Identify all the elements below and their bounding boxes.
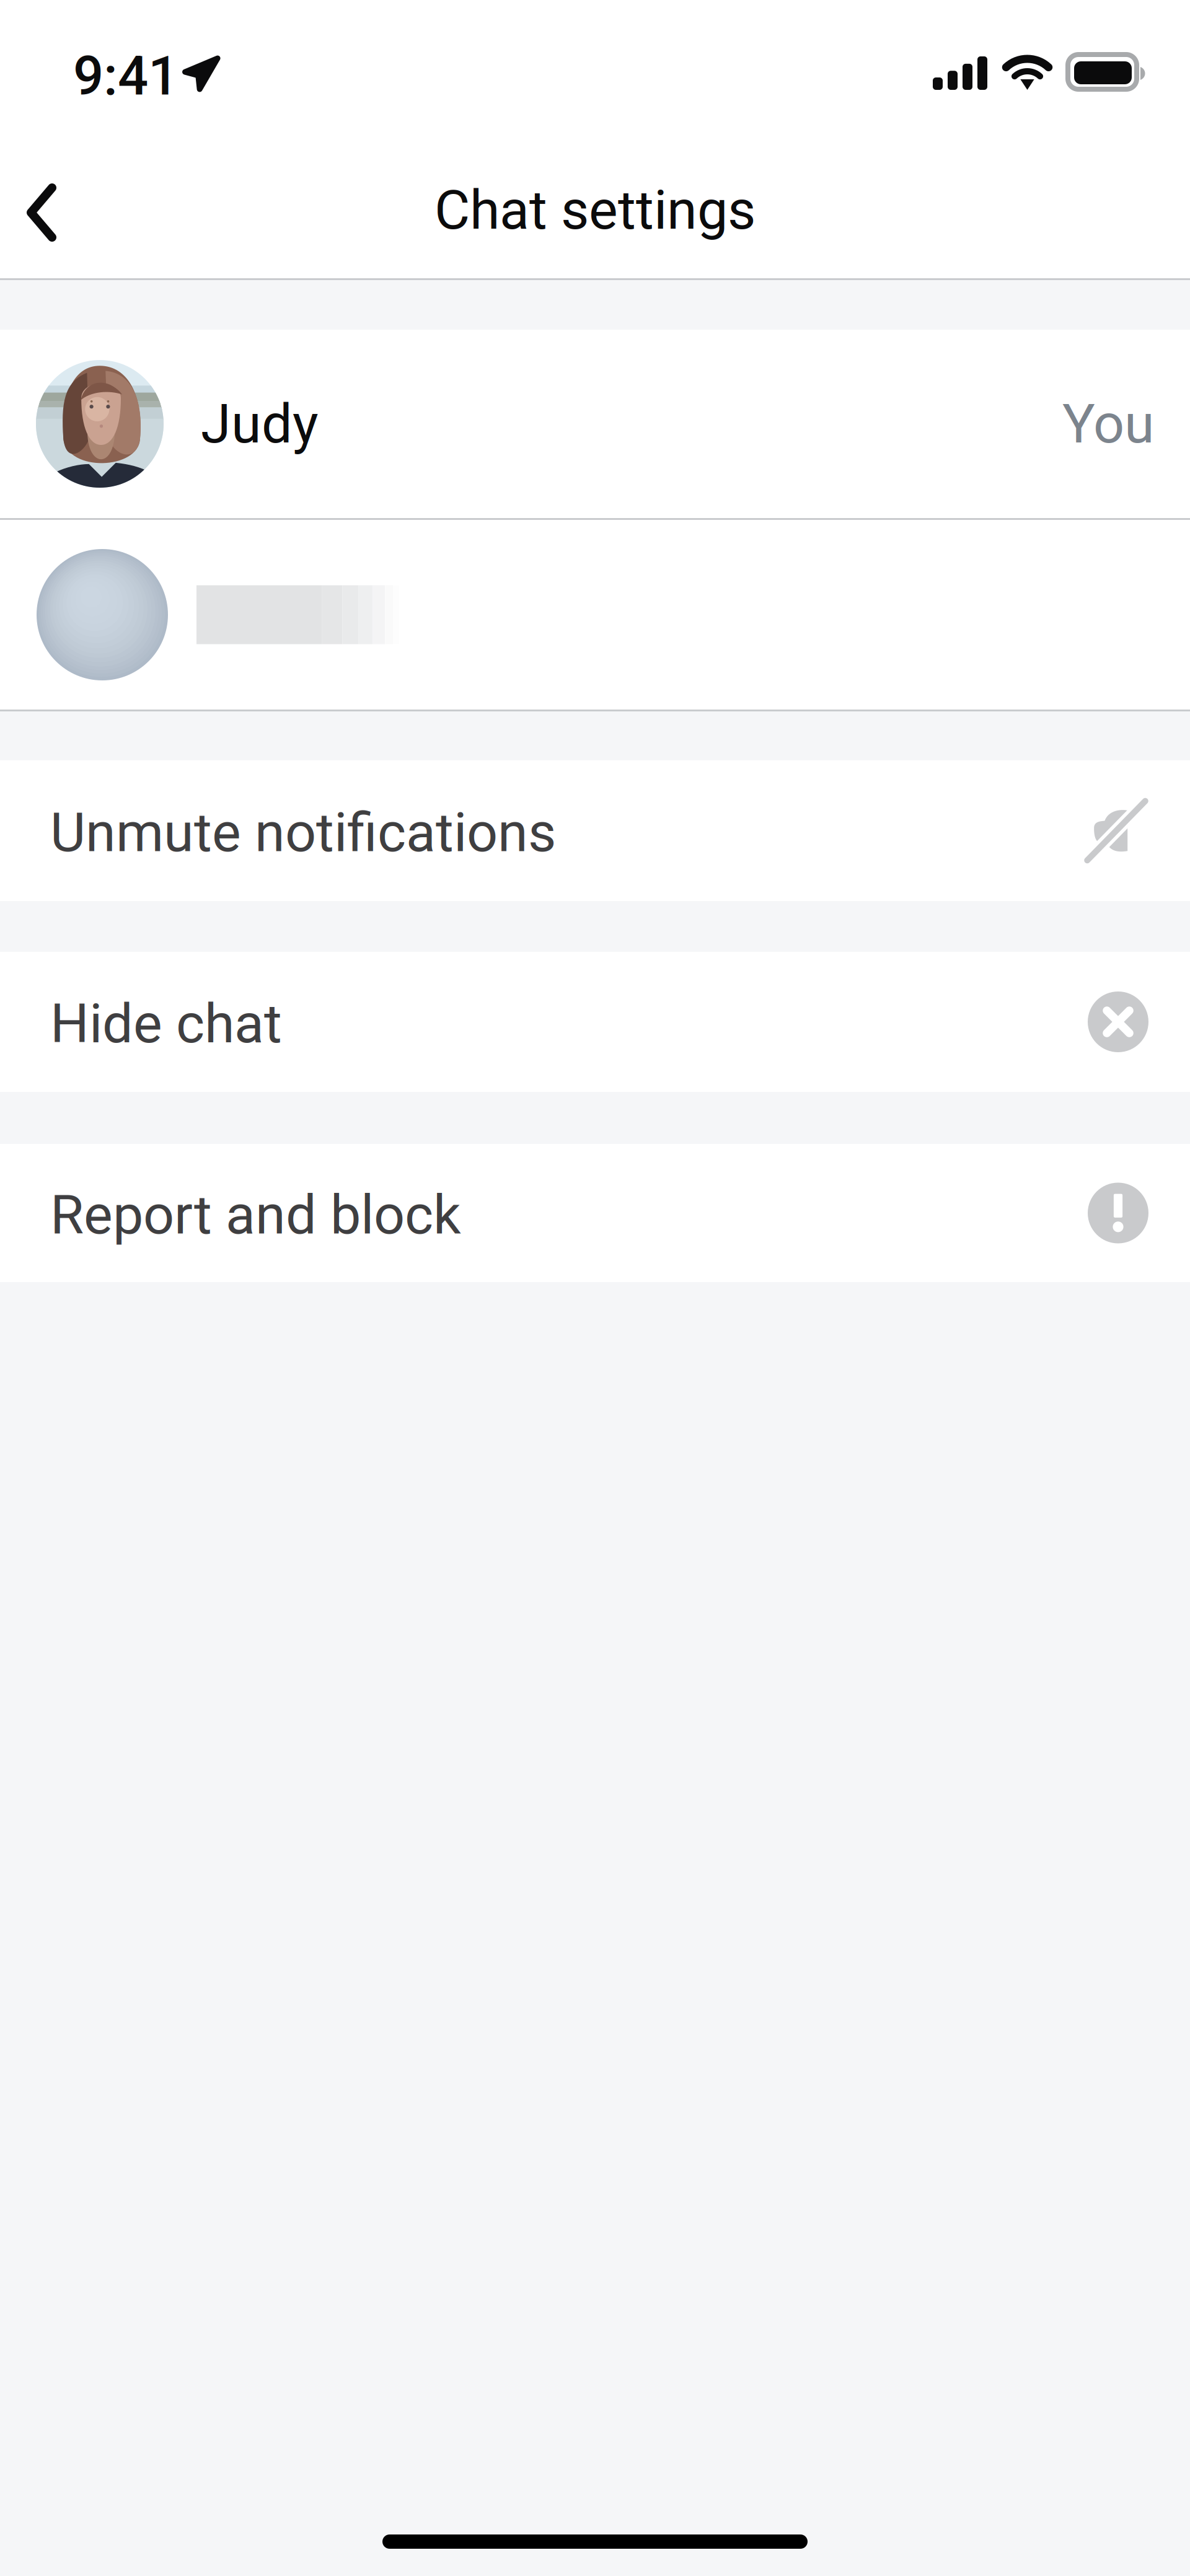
staticText: Unmute notifications (50, 801, 556, 864)
staticText: Report and block (50, 1183, 461, 1247)
staticText: Judy (201, 392, 319, 456)
staticText: 9:41 (73, 45, 178, 108)
staticText: Chat settings (434, 178, 756, 242)
button[interactable]: Unmute notifications (0, 760, 1190, 901)
staticText: Hide chat (50, 992, 282, 1056)
button[interactable]: Back (0, 112, 87, 280)
button[interactable] (0, 520, 1190, 710)
button[interactable]: Report and block (0, 1144, 1190, 1282)
button[interactable]: Judy (0, 330, 1190, 518)
staticText: You (1062, 392, 1155, 456)
button[interactable]: Hide chat (0, 952, 1190, 1092)
